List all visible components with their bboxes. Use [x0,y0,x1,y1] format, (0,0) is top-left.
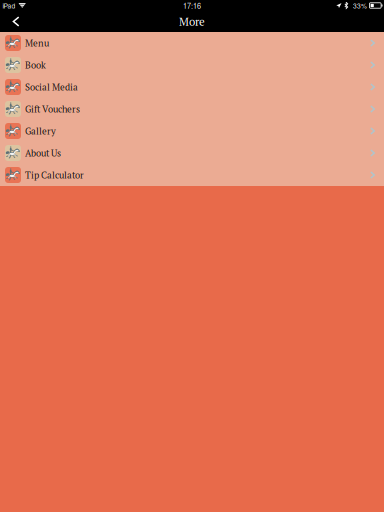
button[interactable]: Gift Vouchers [0,98,384,120]
button[interactable]: Menu [0,32,384,54]
button[interactable]: Tip Calculator [0,164,384,186]
staticText: About Us [25,147,61,159]
staticText: More [179,14,205,29]
button[interactable]: About Us [0,142,384,164]
button[interactable]: Book [0,54,384,76]
button[interactable]: Social Media [0,76,384,98]
staticText: Social Media [25,81,78,93]
staticText: Gift Vouchers [25,103,80,115]
staticText: Book [25,59,46,71]
staticText: Menu [25,37,49,49]
button[interactable]: Back [0,11,28,32]
button[interactable]: Gallery [0,120,384,142]
staticText: 33% [353,1,367,10]
staticText: Tip Calculator [25,169,84,181]
staticText: 17:16 [183,0,201,11]
staticText: Gallery [25,125,56,137]
staticText: iPad [2,1,15,10]
